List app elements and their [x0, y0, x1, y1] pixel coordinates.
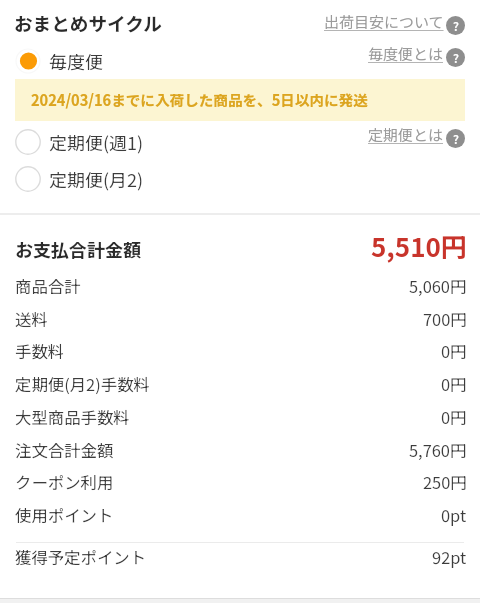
- staticText: ?: [453, 130, 459, 147]
- button[interactable]: 定期便(週1): [0, 129, 480, 155]
- staticText: 250円: [423, 470, 467, 494]
- button[interactable]: クーポン利用: [15, 469, 467, 495]
- staticText: 出荷目安について: [324, 11, 444, 33]
- staticText: 注文合計金額: [15, 438, 114, 462]
- button[interactable]: 使用ポイント: [15, 502, 467, 528]
- staticText: 毎度便: [49, 48, 103, 74]
- staticText: 使用ポイント: [15, 503, 114, 527]
- staticText: 大型商品手数料: [15, 405, 130, 429]
- button[interactable]: 定期便とは ヘルプ: [368, 124, 465, 146]
- button[interactable]: 毎度便とは ヘルプ: [368, 43, 465, 65]
- button[interactable]: 手数料: [15, 338, 467, 364]
- button[interactable]: 獲得予定ポイント: [15, 544, 467, 570]
- staticText: 定期便(週1): [49, 129, 144, 155]
- staticText: 0円: [441, 339, 467, 363]
- staticText: 定期便(月2): [49, 166, 144, 192]
- staticText: ?: [453, 49, 459, 66]
- staticText: 5,510円: [371, 227, 467, 265]
- staticText: クーポン利用: [15, 470, 114, 494]
- staticText: 700円: [423, 307, 467, 331]
- staticText: 送料: [15, 307, 48, 331]
- button[interactable]: 送料: [15, 306, 467, 332]
- staticText: ?: [453, 17, 459, 34]
- staticText: 獲得予定ポイント: [15, 545, 147, 569]
- button[interactable]: 定期便(月2): [0, 166, 480, 192]
- staticText: 5,060円: [409, 274, 467, 298]
- staticText: 商品合計: [15, 274, 81, 298]
- staticText: 定期便(月2)手数料: [15, 372, 150, 396]
- staticText: お支払合計金額: [15, 236, 141, 262]
- staticText: 0pt: [441, 503, 467, 527]
- staticText: 0円: [441, 405, 467, 429]
- staticText: 0円: [441, 372, 467, 396]
- button[interactable]: 定期便(月2)手数料: [15, 371, 467, 397]
- staticText: おまとめサイクル: [14, 9, 162, 36]
- button[interactable]: 注文合計金額: [15, 437, 467, 463]
- staticText: 92pt: [432, 545, 467, 569]
- button[interactable]: 毎度便: [0, 48, 480, 74]
- button[interactable]: 大型商品手数料: [15, 404, 467, 430]
- button[interactable]: 出荷目安について ヘルプ: [324, 11, 465, 33]
- staticText: 5,760円: [409, 438, 467, 462]
- staticText: 定期便とは: [368, 124, 444, 146]
- staticText: 毎度便とは: [368, 43, 444, 65]
- staticText: 2024/03/16までに入荷した商品を、5日以内に発送: [31, 89, 368, 110]
- staticText: 手数料: [15, 339, 65, 363]
- button[interactable]: 商品合計: [15, 273, 467, 299]
